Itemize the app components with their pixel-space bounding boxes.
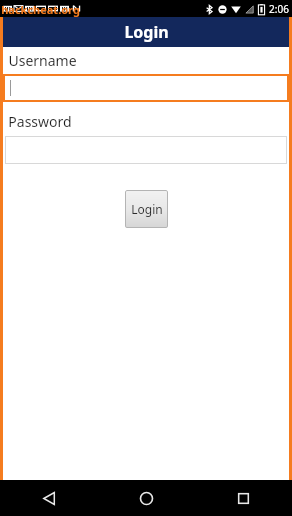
button[interactable]: Login xyxy=(125,190,168,228)
staticText: hackcheat.org xyxy=(1,2,80,17)
staticText: 2:06 xyxy=(269,2,289,16)
button[interactable]: Home xyxy=(98,480,195,516)
button[interactable] xyxy=(5,136,287,164)
staticText: Username xyxy=(8,51,77,70)
staticText: Login xyxy=(124,21,169,43)
button[interactable]: Recent apps xyxy=(195,480,292,516)
staticText: Login xyxy=(131,201,163,217)
staticText: Password xyxy=(8,112,72,131)
button[interactable]: Back xyxy=(0,480,98,516)
button[interactable] xyxy=(3,74,289,102)
